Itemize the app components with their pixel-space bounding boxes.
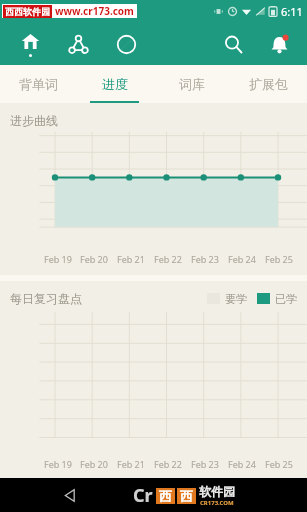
button[interactable]: 扩展包 xyxy=(230,65,307,103)
staticText: 词库 xyxy=(179,76,205,92)
button[interactable]: Back xyxy=(52,478,86,512)
staticText: 进度 xyxy=(102,76,128,92)
staticText: 背单词 xyxy=(19,76,58,92)
button[interactable]: Network xyxy=(58,24,98,64)
staticText: 要学 xyxy=(225,292,247,306)
staticText: Feb 20 xyxy=(80,458,108,470)
button[interactable]: 进度 xyxy=(76,65,153,103)
staticText: CR173.COM xyxy=(200,499,234,507)
staticText: 每日复习盘点 xyxy=(10,291,82,306)
staticText: Feb 21 xyxy=(117,253,145,265)
staticText: Feb 25 xyxy=(265,253,293,265)
button[interactable]: 词库 xyxy=(153,65,230,103)
staticText: 西 xyxy=(159,488,172,504)
button[interactable]: Search xyxy=(213,24,253,64)
staticText: 进步曲线 xyxy=(10,113,58,128)
staticText: Feb 24 xyxy=(228,458,256,470)
staticText: Feb 22 xyxy=(154,253,182,265)
staticText: 西西软件园 xyxy=(5,6,50,17)
button[interactable]: 背单词 xyxy=(0,65,76,103)
staticText: 已学 xyxy=(275,292,297,306)
button[interactable]: Explore xyxy=(106,24,146,64)
staticText: Feb 20 xyxy=(80,253,108,265)
staticText: www.cr173.com xyxy=(55,4,134,18)
staticText: Feb 24 xyxy=(228,253,256,265)
staticText: Feb 21 xyxy=(117,458,145,470)
staticText: Feb 25 xyxy=(265,458,293,470)
staticText: Cr xyxy=(133,483,153,508)
staticText: Feb 23 xyxy=(191,458,219,470)
staticText: Feb 23 xyxy=(191,253,219,265)
button[interactable]: Home xyxy=(10,24,50,64)
staticText: 软件园 xyxy=(199,484,235,499)
staticText: Feb 19 xyxy=(44,458,72,470)
staticText: 6:11 xyxy=(281,4,303,19)
staticText: 西 xyxy=(180,488,193,504)
staticText: 扩展包 xyxy=(249,76,288,92)
button[interactable]: Notifications xyxy=(259,24,299,64)
staticText: Feb 22 xyxy=(154,458,182,470)
staticText: Feb 19 xyxy=(44,253,72,265)
